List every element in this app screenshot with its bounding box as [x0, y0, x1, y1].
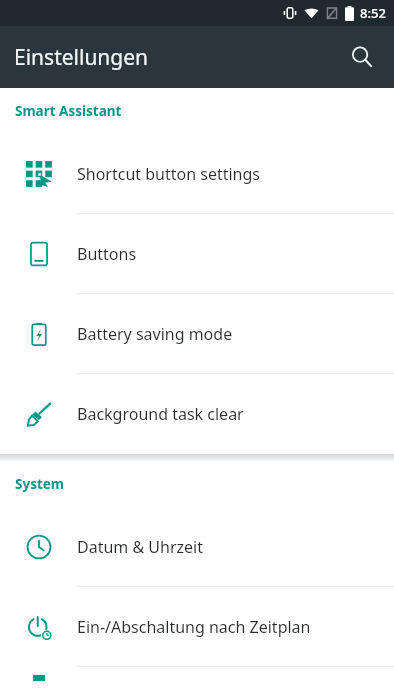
staticText: Buttons	[77, 243, 137, 265]
staticText: Datum & Uhrzeit	[77, 536, 203, 558]
staticText: Ein-/Abschaltung nach Zeitplan	[77, 616, 311, 638]
button[interactable]: Ein-/Abschaltung nach Zeitplan	[0, 587, 394, 667]
staticText: System	[15, 475, 65, 493]
button[interactable]: Search	[338, 33, 386, 81]
button[interactable]: Background task clear	[0, 374, 394, 454]
staticText: 8:52	[360, 4, 386, 22]
button[interactable]: Shortcut button settings	[0, 134, 394, 214]
button[interactable]: Buttons	[0, 214, 394, 294]
staticText: Smart Assistant	[15, 102, 122, 120]
staticText: Shortcut button settings	[77, 163, 261, 185]
button[interactable]: Datum & Uhrzeit	[0, 507, 394, 587]
button[interactable]	[0, 667, 394, 687]
staticText: Background task clear	[77, 403, 244, 425]
staticText: Battery saving mode	[77, 323, 233, 345]
button[interactable]: Battery saving mode	[0, 294, 394, 374]
staticText: Einstellungen	[14, 43, 149, 72]
